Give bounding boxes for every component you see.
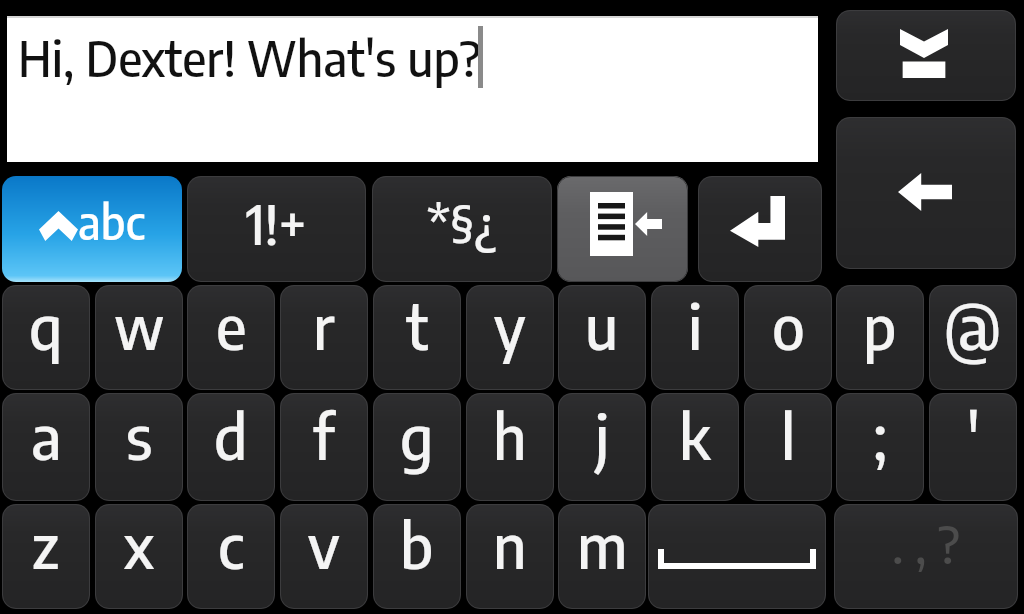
button[interactable]: k (651, 393, 739, 501)
staticText: r (313, 286, 335, 363)
button[interactable]: a (2, 393, 90, 501)
staticText: t (406, 286, 429, 363)
button[interactable]: h (466, 393, 554, 501)
staticText: a (31, 396, 62, 473)
button[interactable]: Insert text (557, 176, 688, 282)
staticText: p (863, 286, 897, 363)
staticText: v (308, 505, 340, 582)
button[interactable]: t (373, 285, 461, 390)
staticText: y (494, 286, 526, 363)
staticText: l (781, 396, 796, 473)
button[interactable]: 1!+ (187, 176, 366, 282)
button[interactable]: p (836, 285, 924, 390)
button[interactable]: @ (929, 285, 1017, 390)
button[interactable]: i (651, 285, 739, 390)
staticText: j (595, 396, 610, 473)
button[interactable]: d (187, 393, 275, 501)
button[interactable]: f (280, 393, 368, 501)
staticText: f (313, 396, 335, 473)
button[interactable]: n (466, 504, 554, 609)
staticText: d (214, 396, 248, 473)
button[interactable]: e (187, 285, 275, 390)
button[interactable]: l (744, 393, 832, 501)
button[interactable]: Space (648, 504, 826, 609)
button[interactable]: v (280, 504, 368, 609)
staticText: . , ? (892, 512, 960, 575)
button[interactable]: m (558, 504, 646, 609)
staticText: m (577, 505, 628, 582)
staticText: o (772, 286, 805, 363)
button[interactable]: ' (929, 393, 1017, 501)
button[interactable]: w (95, 285, 183, 390)
button[interactable]: x (95, 504, 183, 609)
button[interactable]: s (95, 393, 183, 501)
staticText: n (493, 505, 527, 582)
staticText: Hi, Dexter! What's up? (18, 27, 481, 88)
staticText: h (493, 396, 527, 473)
staticText: z (32, 505, 60, 582)
button[interactable]: o (744, 285, 832, 390)
button[interactable]: z (2, 504, 90, 609)
button[interactable]: *§¿ (372, 176, 552, 282)
staticText: ' (967, 396, 980, 473)
staticText: @ (944, 286, 1002, 363)
button[interactable]: c (187, 504, 275, 609)
staticText: abc (78, 193, 145, 250)
staticText: *§¿ (427, 191, 497, 254)
staticText: w (114, 286, 165, 363)
staticText: g (400, 396, 434, 473)
button[interactable]: Hi, Dexter! What's up? (7, 16, 818, 162)
staticText: 1!+ (246, 189, 307, 256)
staticText: q (29, 286, 63, 363)
button[interactable]: j (558, 393, 646, 501)
button[interactable]: Enter (698, 176, 822, 282)
staticText: u (585, 286, 619, 363)
staticText: k (679, 396, 711, 473)
button[interactable]: r (280, 285, 368, 390)
staticText: ; (873, 396, 888, 473)
staticText: c (218, 505, 244, 582)
button[interactable]: g (373, 393, 461, 501)
button[interactable]: y (466, 285, 554, 390)
button[interactable]: . , ? (834, 504, 1018, 609)
button[interactable]: abc (2, 176, 182, 282)
button[interactable]: b (373, 504, 461, 609)
staticText: i (688, 286, 703, 363)
button[interactable]: u (558, 285, 646, 390)
staticText: x (124, 505, 154, 582)
button[interactable]: q (2, 285, 90, 390)
staticText: e (216, 286, 247, 363)
staticText: s (126, 396, 153, 473)
button[interactable]: Backspace (836, 117, 1016, 269)
button[interactable]: Hide keyboard (836, 10, 1016, 101)
staticText: b (400, 505, 434, 582)
button[interactable]: ; (836, 393, 924, 501)
